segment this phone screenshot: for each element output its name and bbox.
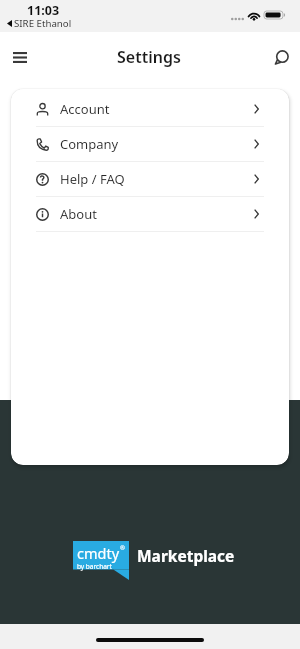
button[interactable]: About bbox=[11, 197, 289, 232]
button[interactable]: Account bbox=[11, 92, 289, 127]
staticText: cmdty bbox=[77, 543, 120, 563]
button[interactable]: Company bbox=[11, 127, 289, 162]
staticText: Marketplace bbox=[137, 545, 235, 566]
staticText: by barchart bbox=[77, 562, 112, 571]
staticText: Settings bbox=[117, 46, 181, 68]
staticText: 11:03 bbox=[27, 2, 60, 19]
staticText: ® bbox=[120, 544, 125, 552]
staticText: SIRE Ethanol bbox=[14, 17, 72, 30]
staticText: Help / FAQ bbox=[60, 170, 125, 188]
staticText: About bbox=[60, 205, 97, 223]
staticText: Account bbox=[60, 100, 110, 118]
button[interactable]: Open navigation menu bbox=[0, 38, 39, 77]
button[interactable]: Messages bbox=[266, 42, 296, 72]
staticText: Company bbox=[60, 135, 119, 153]
button[interactable]: Help / FAQ bbox=[11, 162, 289, 197]
